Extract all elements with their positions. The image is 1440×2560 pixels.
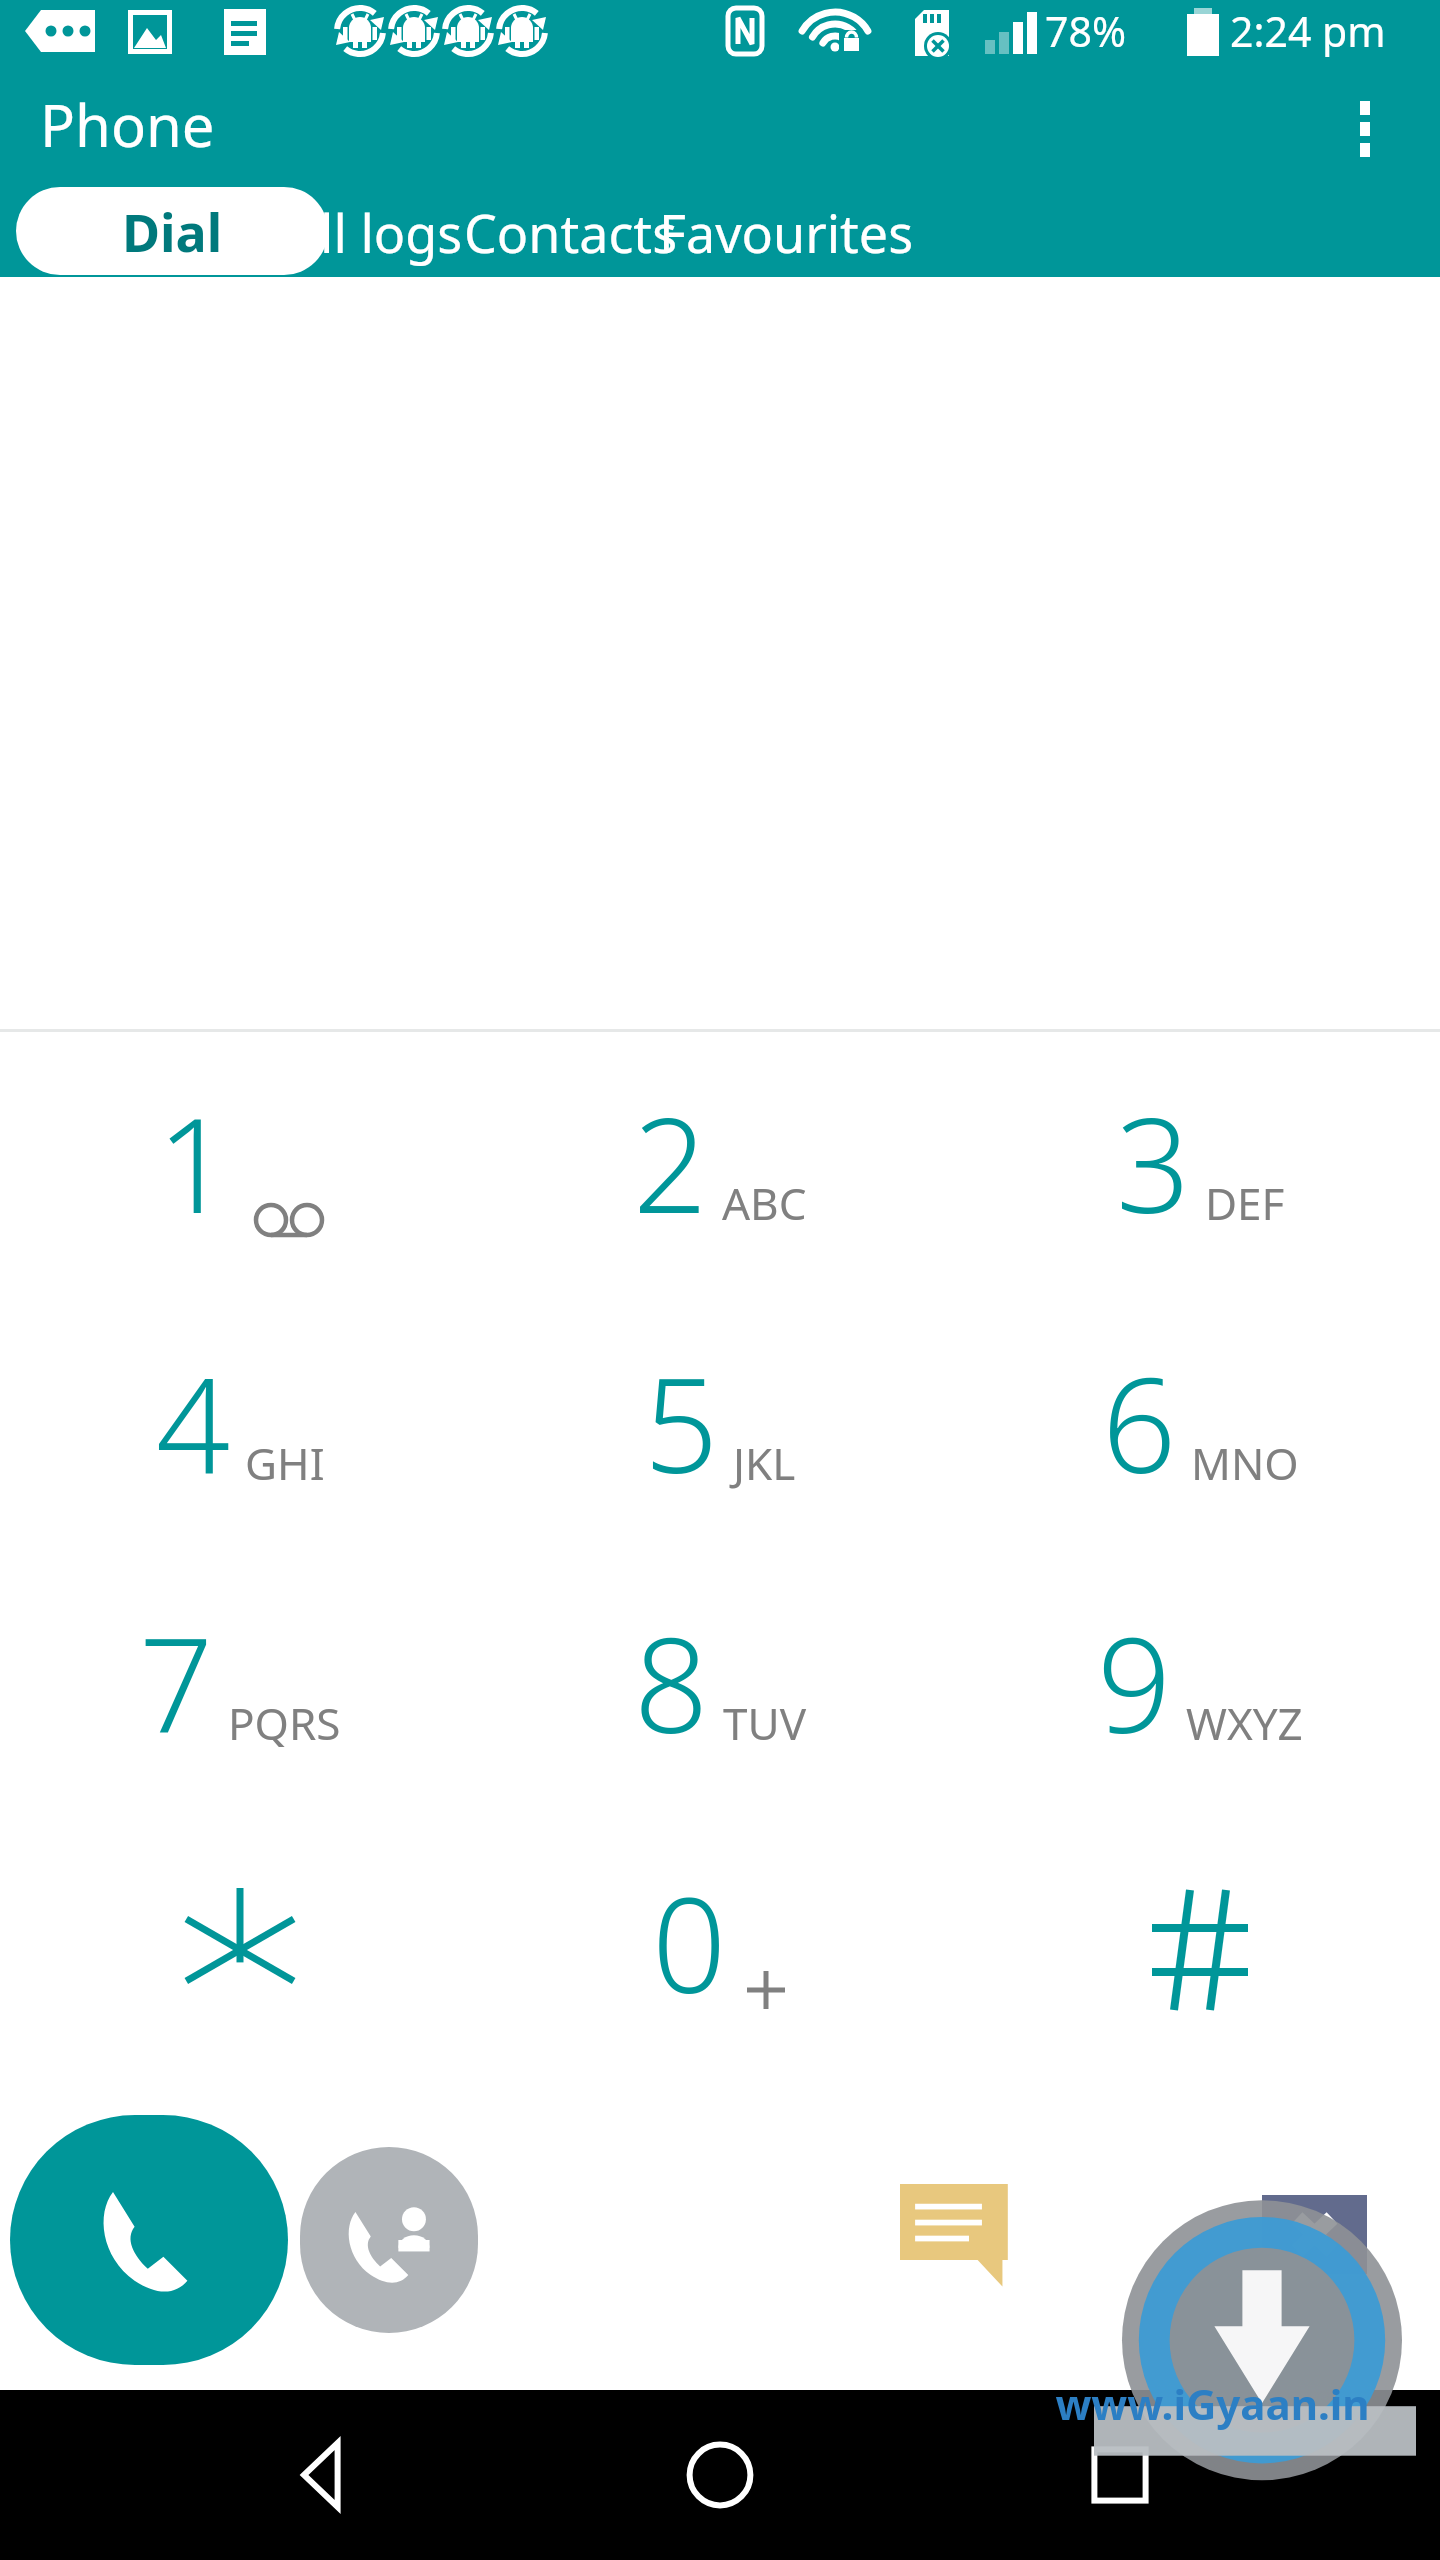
button[interactable]: Call logs: [244, 188, 477, 276]
button[interactable]: Dial: [16, 187, 328, 275]
button[interactable]: Call: [10, 2115, 288, 2365]
staticText: 2: [633, 1074, 708, 1251]
button[interactable]: Home: [640, 2395, 800, 2555]
button[interactable]: Back: [240, 2395, 400, 2555]
staticText: 4: [156, 1334, 231, 1511]
staticText: Dial: [122, 196, 223, 267]
staticText: WXYZ: [1186, 1693, 1303, 1753]
staticText: 1: [157, 1074, 232, 1251]
staticText: 9: [1097, 1594, 1172, 1771]
button[interactable]: Favourites: [645, 188, 928, 276]
staticText: JKL: [733, 1433, 796, 1493]
button[interactable]: 3: [960, 1032, 1440, 1292]
button[interactable]: 9: [960, 1552, 1440, 1812]
staticText: www.iGyaan.in: [1055, 2375, 1370, 2432]
button[interactable]: Contacts: [450, 188, 692, 276]
staticText: PQRS: [228, 1693, 341, 1753]
staticText: 8: [634, 1594, 709, 1771]
staticText: 3: [1116, 1074, 1191, 1251]
button[interactable]: 7: [0, 1552, 480, 1812]
button[interactable]: Message: [880, 2159, 1030, 2309]
button[interactable]: Call contact: [300, 2147, 478, 2333]
button[interactable]: [0, 1812, 480, 2072]
button[interactable]: 4: [0, 1292, 480, 1552]
staticText: TUV: [723, 1693, 807, 1753]
button[interactable]: 0: [480, 1812, 960, 2072]
button[interactable]: 5: [480, 1292, 960, 1552]
staticText: 7: [139, 1594, 214, 1771]
staticText: GHI: [245, 1433, 325, 1493]
staticText: ABC: [722, 1173, 807, 1233]
button[interactable]: Recents: [1040, 2395, 1200, 2555]
staticText: Call logs: [258, 197, 463, 268]
button[interactable]: [960, 1812, 1440, 2072]
button[interactable]: 2: [480, 1032, 960, 1292]
staticText: Phone: [40, 85, 215, 164]
button[interactable]: 8: [480, 1552, 960, 1812]
staticText: DEF: [1205, 1173, 1285, 1233]
staticText: Favourites: [659, 197, 914, 268]
staticText: 2:24 pm: [1230, 3, 1386, 59]
staticText: 6: [1102, 1334, 1177, 1511]
button[interactable]: 1: [0, 1032, 480, 1292]
staticText: 0: [652, 1854, 727, 2031]
button[interactable]: More options: [1310, 70, 1420, 180]
staticText: 78%: [1045, 3, 1126, 59]
staticText: MNO: [1191, 1433, 1299, 1493]
staticText: 5: [644, 1334, 719, 1511]
staticText: Contacts: [464, 197, 678, 268]
button[interactable]: 6: [960, 1292, 1440, 1552]
